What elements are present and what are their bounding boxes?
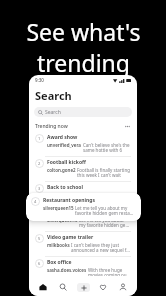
staticText: See what's [26,16,141,47]
staticText: Award show [47,134,78,141]
button[interactable]: Profile [113,278,133,296]
button[interactable]: 4 [26,193,141,221]
button[interactable]: 5 [29,232,137,256]
staticText: Am I the only one who likes back-to-scho… [91,192,131,204]
staticText: With three huge movies coming out this w… [88,267,131,276]
staticText: Can't believe she's the same hottie with… [83,142,131,154]
staticText: silverqueen15 [47,217,79,223]
staticText: I can't believe they just announced a ne… [71,242,131,254]
staticText: Trending now [35,123,68,130]
staticText: Video game trailer [47,234,94,241]
button[interactable]: Likes [93,278,113,296]
button[interactable]: Search [53,278,73,296]
staticText: 4 [34,199,37,204]
staticText: Restaurant openings [47,209,99,216]
button[interactable]: Search [34,107,132,117]
staticText: Let me tell you about my favorite hidden… [79,217,131,229]
button[interactable]: Create [73,278,93,296]
staticText: colton.gone2 [47,167,77,173]
staticText: Box office [47,259,72,266]
staticText: 3 [38,186,41,191]
staticText: Football kickoff [47,159,86,166]
button[interactable]: More options [123,122,131,130]
button[interactable]: 4 [29,207,137,231]
staticText: Search [45,109,61,116]
button[interactable]: Home [33,278,53,296]
button[interactable]: 2 [29,157,137,181]
staticText: Football is finally starting this week I… [77,167,131,179]
staticText: Restaurant openings [43,197,95,204]
staticText: 6 [38,261,41,266]
staticText: 2 [38,161,41,166]
staticText: sasha.does.voices [47,267,88,273]
staticText: Back to school [47,184,83,191]
staticText: unverified_vera [47,142,83,148]
staticText: shantouthfowergirl [47,192,91,198]
staticText: Search [35,88,72,103]
staticText: Let me tell you about my favorite hidden… [75,205,136,217]
staticText: silverqueen15 [43,205,75,211]
button[interactable]: 3 [29,182,137,206]
staticText: trending [37,47,130,78]
staticText: 5 [38,236,41,241]
button[interactable]: 1 [29,132,137,156]
staticText: 9:30 [35,77,44,83]
staticText: milkbooks [47,242,71,248]
staticText: 1 [38,136,41,141]
button[interactable]: 6 [29,257,137,278]
